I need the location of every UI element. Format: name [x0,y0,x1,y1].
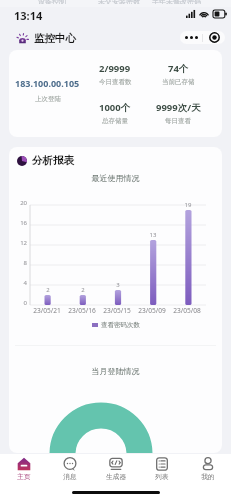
staticText: 13:14 [14,8,43,23]
button[interactable]: 消息 [47,454,93,500]
staticText: 上次登陆 [35,95,61,103]
staticText: 23/05/08 [170,306,204,315]
staticText: 生成器 [106,472,127,481]
staticText: 今日查看数 [99,78,132,86]
staticText: 0 [9,299,27,307]
staticText: 2 [38,286,58,294]
staticText: 23/05/16 [65,306,99,315]
button[interactable]: 我的 [185,454,231,500]
staticText: 每日查看 [165,117,191,125]
staticText: 查看密码次数 [101,321,140,329]
button[interactable]: 1000个 [84,101,146,125]
staticText: 9999次/天 [156,101,201,114]
staticText: 3 [108,281,128,289]
staticText: 183.100.00.105 [15,77,80,89]
staticText: 当前已存储 [162,78,195,86]
staticText: 4 [9,279,27,287]
staticText: 当月登陆情况 [9,366,222,376]
button[interactable]: 主页 [0,454,47,500]
staticText: 20 [9,199,27,207]
button[interactable]: 74个 [147,62,209,86]
staticText: 2 [73,286,93,294]
staticText: 74个 [168,62,189,75]
button[interactable]: More options [180,31,202,44]
staticText: 23/05/21 [30,306,64,315]
staticText: 23/05/15 [100,306,134,315]
staticText: 半年未修改密码 [152,0,201,4]
staticText: 列表 [155,472,169,481]
staticText: 1000个 [99,101,131,114]
staticText: 主页 [17,472,31,481]
staticText: 16 [9,219,27,227]
staticText: 8 [9,259,27,267]
staticText: 12 [9,239,27,247]
button[interactable]: 9999次/天 [147,101,209,125]
staticText: 13 [143,231,163,239]
staticText: 消息 [63,472,77,481]
button[interactable]: 生成器 [93,454,139,500]
button[interactable]: 列表 [139,454,185,500]
staticText: 总存储量 [102,117,128,125]
button[interactable]: 2/9999 [84,62,146,86]
staticText: 2/9999 [99,62,131,75]
staticText: 23/05/09 [135,306,169,315]
button[interactable]: Close mini program [203,31,225,44]
staticText: 未交安装密数 [98,0,140,4]
staticText: 设备控制 [38,0,66,4]
staticText: 最近使用情况 [9,173,222,183]
staticText: 19 [178,201,198,209]
staticText: 我的 [201,472,215,481]
staticText: 监控中心 [34,32,76,45]
staticText: 分析报表 [32,154,74,167]
